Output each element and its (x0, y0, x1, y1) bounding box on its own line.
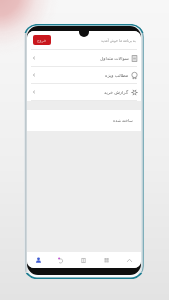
staticText: مطالب ویژه (105, 72, 129, 78)
button[interactable]: مطالب ویژه (27, 67, 141, 83)
staticText: خروج (37, 38, 47, 43)
staticText: سوالات متداول (100, 55, 129, 61)
button[interactable]: Apps (95, 252, 118, 268)
staticText: گزارش خرید (104, 89, 129, 95)
button[interactable]: Bookmarks (72, 252, 95, 268)
button[interactable]: سوالات متداول (27, 50, 141, 66)
staticText: به برنامه ما خوش آمدید (101, 38, 136, 43)
button[interactable]: گزارش خرید (27, 84, 141, 100)
button[interactable]: Home (118, 252, 141, 268)
button[interactable]: Logo (33, 35, 51, 45)
staticText: ساخته شده (113, 118, 133, 124)
button[interactable]: ساخته شده (27, 110, 141, 131)
button[interactable]: Notifications (49, 252, 72, 268)
button[interactable]: Profile (27, 252, 49, 268)
